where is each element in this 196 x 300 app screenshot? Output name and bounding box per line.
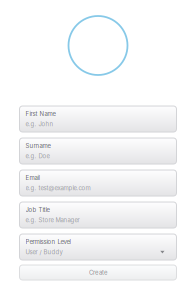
button[interactable]: Job Title	[19, 202, 176, 228]
staticText: Job Title	[25, 206, 49, 213]
button[interactable]: Email	[19, 170, 176, 196]
staticText: First Name	[25, 110, 55, 117]
staticText: e.g. test@example.com	[25, 184, 90, 192]
staticText: Permission Level	[25, 238, 70, 245]
staticText: e.g. Doe	[25, 152, 49, 160]
staticText: User / Buddy	[25, 248, 62, 256]
staticText: e.g. John	[25, 120, 53, 128]
button[interactable]: Permission Level	[19, 234, 176, 260]
button[interactable]: First Name	[19, 106, 176, 132]
staticText: Surname	[25, 142, 50, 149]
button[interactable]: Surname	[19, 138, 176, 164]
staticText: e.g. Store Manager	[25, 216, 79, 224]
staticText: Create	[89, 269, 107, 276]
button[interactable]: Create	[19, 265, 176, 280]
staticText: Email	[25, 174, 39, 181]
